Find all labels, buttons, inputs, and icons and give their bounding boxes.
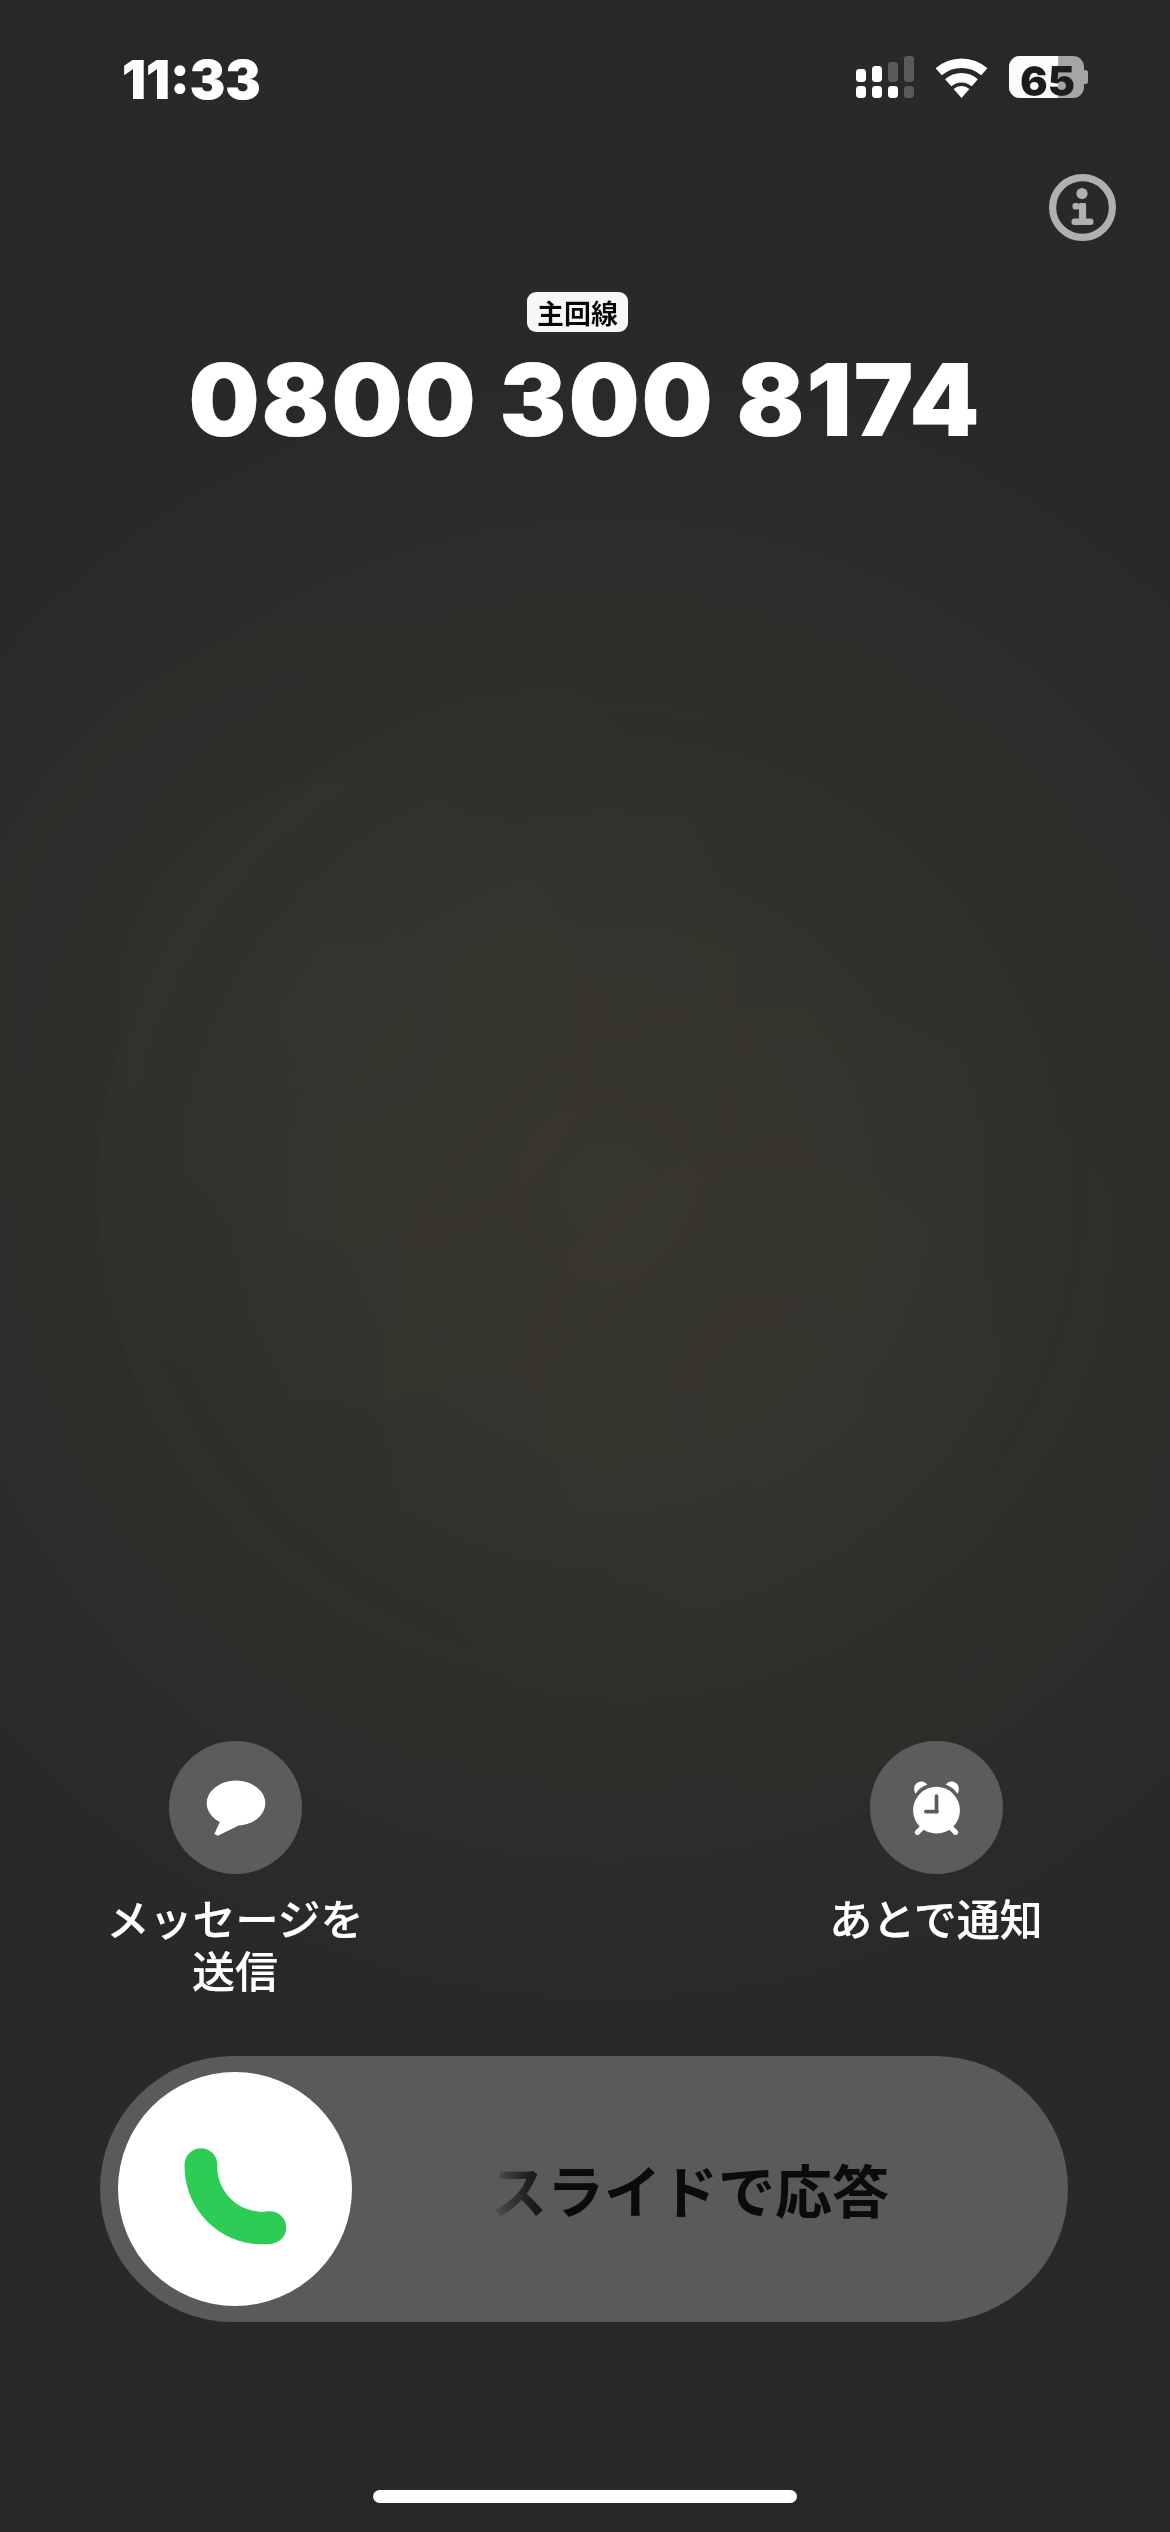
staticText: メッセージを 送信 (106, 1886, 364, 2001)
button[interactable]: Answer call (118, 2072, 352, 2306)
staticText: 主回線 (537, 293, 618, 332)
staticText: 0800 300 8174 (188, 339, 982, 460)
button[interactable]: スライドで応答 (100, 2056, 1068, 2322)
staticText: 11:33 (122, 48, 261, 112)
button[interactable]: Send message (169, 1741, 302, 1874)
button[interactable]: Remind me later (870, 1741, 1003, 1874)
staticText: スライドで応答 (490, 2147, 889, 2230)
staticText: 65 (1020, 56, 1075, 106)
staticText: あとで通知 (829, 1886, 1043, 1948)
button[interactable]: Call info (1042, 167, 1122, 247)
